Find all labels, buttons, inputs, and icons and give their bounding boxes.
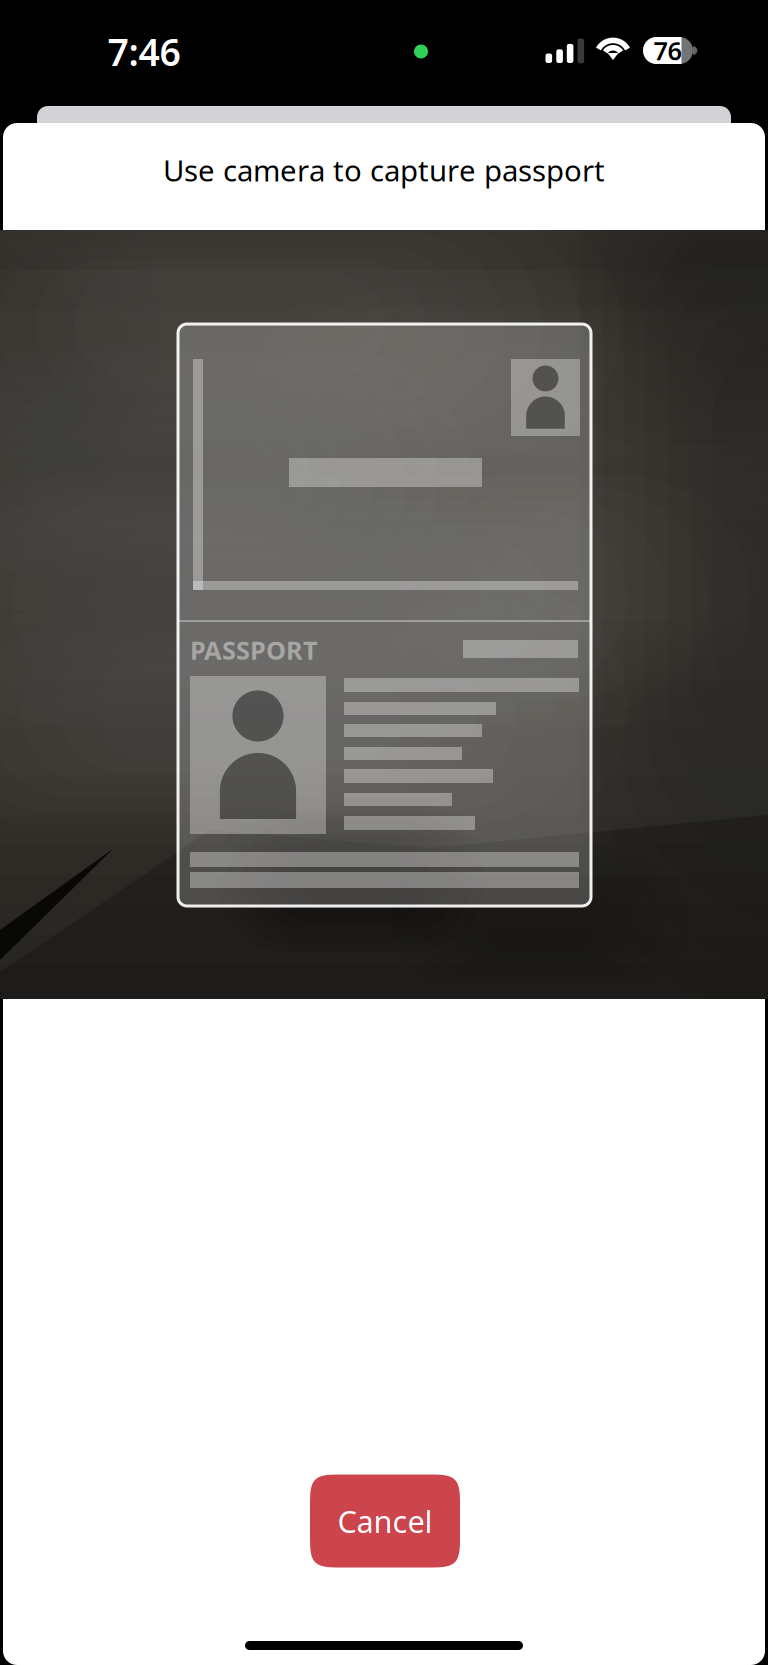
staticText: Cancel (337, 1501, 432, 1541)
button[interactable]: Cancel (310, 1474, 460, 1567)
staticText: PASSPORT (190, 633, 318, 667)
staticText: Use camera to capture passport (163, 150, 605, 189)
staticText: 76 (653, 34, 681, 67)
staticText: 7:46 (107, 27, 180, 76)
